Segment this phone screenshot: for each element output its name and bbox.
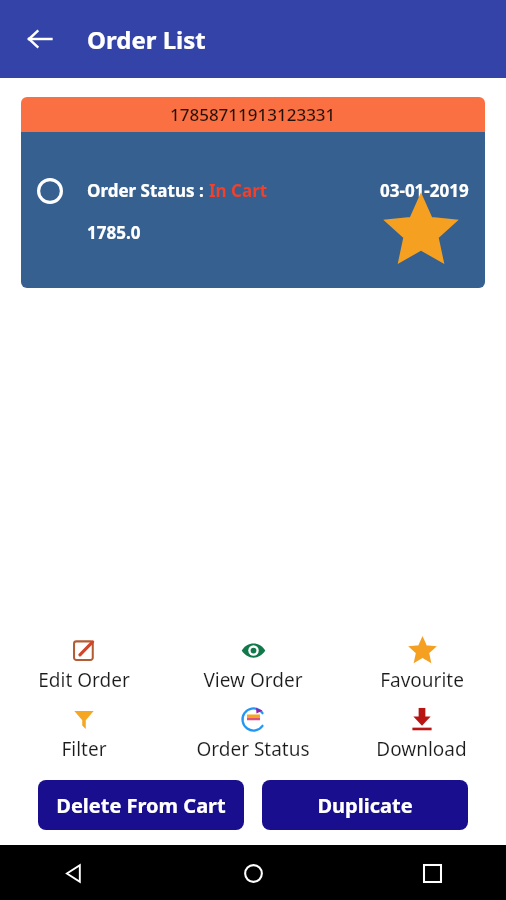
staticText: Download <box>376 736 467 762</box>
button[interactable]: 17858711913123331 <box>21 97 485 288</box>
staticText: 1785.0 <box>87 221 141 244</box>
button[interactable]: Filter <box>0 704 168 764</box>
button[interactable]: Recents <box>412 853 452 893</box>
staticText: Order Status <box>196 736 310 762</box>
button[interactable]: Back <box>14 13 66 65</box>
button[interactable]: Favourite <box>337 635 506 695</box>
button[interactable]: Delete From Cart <box>38 780 244 830</box>
button[interactable]: Order Status <box>168 704 337 764</box>
staticText: In Cart <box>209 179 268 202</box>
staticText: Edit Order <box>38 667 130 693</box>
staticText: Order List <box>87 23 206 56</box>
button[interactable]: Edit Order <box>0 635 168 695</box>
button[interactable]: Back <box>54 853 94 893</box>
button[interactable]: Duplicate <box>262 780 468 830</box>
button[interactable]: Download <box>337 704 506 764</box>
staticText: Order Status : <box>87 179 209 202</box>
button[interactable]: View Order <box>168 635 337 695</box>
staticText: 17858711913123331 <box>170 103 336 126</box>
staticText: Favourite <box>380 667 464 693</box>
staticText: Duplicate <box>317 792 413 819</box>
staticText: Delete From Cart <box>56 792 226 819</box>
staticText: 03-01-2019 <box>380 179 469 202</box>
staticText: View Order <box>203 667 303 693</box>
staticText: Filter <box>61 736 107 762</box>
button[interactable]: Home <box>233 853 273 893</box>
